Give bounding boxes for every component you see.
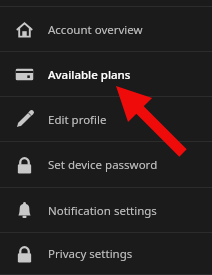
staticText: Account overview — [48, 22, 143, 38]
button[interactable]: Set device password — [0, 142, 212, 188]
button[interactable]: Notification settings — [0, 188, 212, 233]
staticText: Set device password — [48, 157, 158, 173]
button[interactable]: Account overview — [0, 7, 212, 52]
staticText: Available plans — [48, 67, 131, 83]
button[interactable]: Edit profile — [0, 97, 212, 142]
staticText: Notification settings — [48, 203, 157, 219]
button[interactable]: Privacy settings — [0, 233, 212, 275]
button[interactable]: Available plans — [0, 52, 212, 97]
staticText: Edit profile — [48, 112, 107, 128]
staticText: Privacy settings — [48, 246, 133, 262]
